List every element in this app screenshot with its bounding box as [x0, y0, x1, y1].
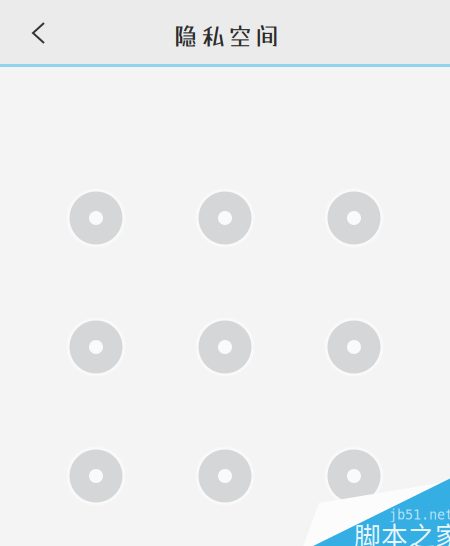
button[interactable]: Pattern dot — [324, 446, 384, 506]
button[interactable]: Pattern dot — [66, 188, 126, 248]
staticText: 隐私空间 — [174, 22, 279, 50]
button[interactable]: Pattern dot — [195, 317, 255, 377]
staticText: jb51.net — [389, 507, 450, 522]
button[interactable]: Pattern dot — [324, 188, 384, 248]
button[interactable]: Back — [0, 0, 66, 65]
staticText: 脚本之家 — [354, 515, 450, 546]
button[interactable]: Pattern dot — [66, 317, 126, 377]
button[interactable]: Pattern dot — [195, 188, 255, 248]
button[interactable]: Pattern dot — [324, 317, 384, 377]
button[interactable]: Pattern dot — [66, 446, 126, 506]
button[interactable]: Pattern dot — [195, 446, 255, 506]
